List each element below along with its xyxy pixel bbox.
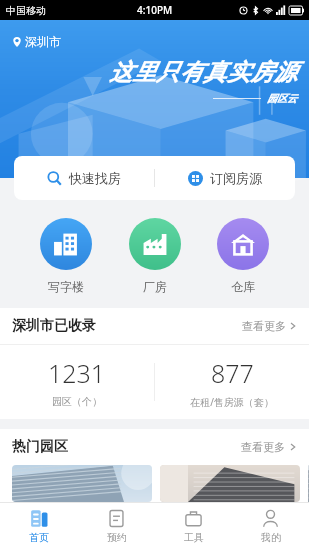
staticText: 热门园区: [12, 438, 68, 456]
staticText: 877: [211, 356, 254, 390]
button[interactable]: 我的: [232, 503, 309, 550]
staticText: 快速找房: [69, 170, 121, 186]
staticText: 园区（个）: [52, 395, 102, 408]
staticText: 中国移动: [6, 4, 46, 17]
button[interactable]: 热门园区: [0, 429, 309, 465]
staticText: 查看更多: [241, 440, 285, 454]
button[interactable]: 工具: [155, 503, 232, 550]
button[interactable]: 首页: [0, 503, 78, 550]
staticText: 仓库: [231, 279, 255, 294]
staticText: 写字楼: [48, 279, 84, 294]
button[interactable]: 1231: [0, 356, 154, 408]
staticText: 厂房: [143, 279, 167, 294]
staticText: 1231: [48, 356, 106, 390]
button[interactable]: 仓库: [213, 214, 273, 298]
staticText: 深圳市: [25, 34, 61, 49]
button[interactable]: 订阅房源: [155, 156, 295, 200]
button[interactable]: 预约: [78, 503, 155, 550]
button[interactable]: 877: [155, 356, 309, 409]
button[interactable]: [12, 465, 152, 502]
staticText: 这里只有真实房源: [109, 58, 297, 87]
button[interactable]: [308, 465, 309, 502]
button[interactable]: 写字楼: [36, 214, 96, 298]
staticText: 预约: [107, 531, 127, 544]
button[interactable]: 深圳市已收录: [0, 308, 309, 344]
button[interactable]: 快速找房: [14, 156, 154, 200]
staticText: 园区云: [267, 92, 297, 105]
button[interactable]: 深圳市: [10, 32, 63, 51]
staticText: 查看更多: [242, 319, 286, 333]
button[interactable]: [160, 465, 300, 502]
staticText: 在租/售房源（套）: [190, 395, 274, 409]
staticText: 订阅房源: [210, 170, 262, 186]
staticText: 4:10PM: [137, 3, 173, 17]
staticText: 我的: [261, 531, 281, 544]
staticText: 深圳市已收录: [12, 317, 96, 335]
button[interactable]: 厂房: [125, 214, 185, 298]
staticText: 首页: [29, 531, 49, 544]
staticText: 工具: [184, 531, 204, 544]
